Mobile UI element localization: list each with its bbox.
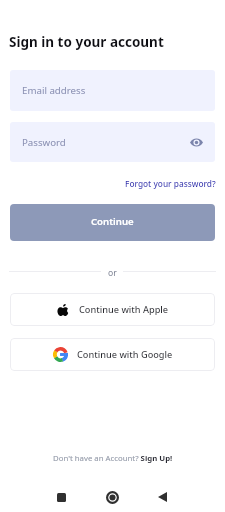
button[interactable]: Email address xyxy=(10,70,215,111)
button[interactable]: Home xyxy=(93,482,132,512)
button[interactable]: Password xyxy=(10,122,215,162)
button[interactable]: Continue with Google xyxy=(10,338,215,371)
staticText: or xyxy=(108,267,117,276)
button[interactable]: Recents xyxy=(42,482,81,512)
button[interactable]: Continue xyxy=(10,204,215,241)
button[interactable]: Forgot your password? xyxy=(125,178,216,189)
staticText: Password xyxy=(22,136,66,149)
staticText: Email address xyxy=(22,84,86,97)
staticText: Forgot your password? xyxy=(125,178,216,189)
staticText: Sign in to your account xyxy=(9,33,164,51)
button[interactable]: Continue with Apple xyxy=(10,293,215,326)
button[interactable]: Show password xyxy=(187,133,206,152)
staticText: Don't have an Account? Sign Up! xyxy=(53,453,173,464)
button[interactable]: Back xyxy=(143,482,182,512)
staticText: Continue xyxy=(91,215,134,228)
staticText: Continue with Apple xyxy=(79,303,169,316)
staticText: Continue with Google xyxy=(77,348,173,361)
button[interactable]: Don't have an Account? Sign Up! xyxy=(53,453,173,464)
